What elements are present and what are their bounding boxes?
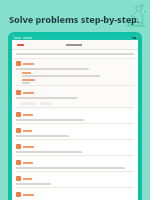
button[interactable] [12, 110, 138, 126]
staticText: Solve problems step-by-step. [9, 13, 140, 26]
button[interactable] [12, 190, 138, 200]
button[interactable]: Exit [16, 43, 25, 47]
button[interactable] [12, 126, 138, 142]
button[interactable] [12, 59, 138, 88]
button[interactable] [12, 174, 138, 190]
button[interactable] [12, 142, 138, 158]
button[interactable] [12, 88, 138, 110]
button[interactable] [12, 158, 138, 174]
